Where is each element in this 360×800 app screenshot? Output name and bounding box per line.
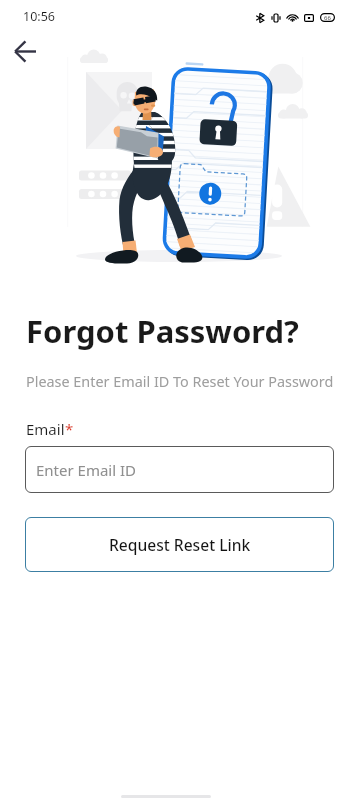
button[interactable]: Enter Email ID <box>25 446 334 493</box>
staticText: Enter Email ID <box>36 460 137 480</box>
staticText: Request Reset Link <box>109 534 251 555</box>
staticText: 10:56 <box>23 8 55 25</box>
staticText: Please Enter Email ID To Reset Your Pass… <box>26 372 334 392</box>
staticText: Forgot Password? <box>26 310 299 352</box>
staticText: Email <box>26 419 65 439</box>
button[interactable]: Back <box>5 31 45 71</box>
staticText: 66 <box>324 14 331 22</box>
staticText: * <box>65 419 74 439</box>
button[interactable]: Request Reset Link <box>25 517 334 572</box>
